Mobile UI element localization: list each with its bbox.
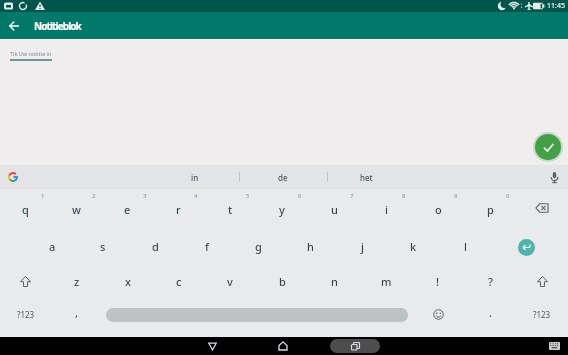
staticText: het	[360, 172, 373, 183]
staticText: b	[279, 274, 286, 289]
button[interactable]: r	[153, 189, 204, 226]
staticText: c	[176, 274, 182, 289]
button[interactable]: q	[0, 189, 51, 226]
staticText: q	[22, 202, 29, 217]
button[interactable]: !	[412, 263, 464, 300]
button[interactable]: z	[51, 263, 102, 300]
button[interactable]	[197, 337, 227, 355]
staticText: de	[278, 172, 288, 183]
button[interactable]: k	[387, 228, 439, 265]
button[interactable]	[330, 339, 380, 353]
button[interactable]: f	[181, 228, 233, 265]
button[interactable]: Tik Uw notitie in	[10, 50, 52, 61]
staticText: s	[100, 239, 106, 254]
button[interactable]	[516, 263, 568, 300]
staticText: 1	[41, 192, 45, 200]
staticText: Notitieblok	[34, 19, 81, 33]
button[interactable]: s	[77, 228, 129, 265]
staticText: 7	[350, 192, 354, 200]
button[interactable]: ?123	[516, 300, 568, 337]
button[interactable]	[516, 189, 568, 226]
staticText: k	[410, 239, 417, 254]
button[interactable]: n	[308, 263, 360, 300]
staticText: Tik Uw notitie in	[10, 50, 52, 57]
staticText: 3	[143, 192, 147, 200]
staticText: 0	[506, 192, 510, 200]
staticText: 9	[454, 192, 458, 200]
button[interactable]: t	[204, 189, 256, 226]
staticText: 5	[246, 192, 250, 200]
button[interactable]: in	[165, 165, 225, 189]
button[interactable]: i	[360, 189, 412, 226]
button[interactable]	[0, 12, 27, 39]
staticText: in	[191, 172, 199, 183]
button[interactable]: u	[308, 189, 360, 226]
staticText: ?123	[533, 309, 551, 320]
staticText: !	[436, 274, 440, 289]
staticText: v	[227, 274, 233, 289]
button[interactable]: c	[153, 263, 204, 300]
button[interactable]	[535, 134, 561, 160]
button[interactable]: e	[102, 189, 153, 226]
button[interactable]: m	[360, 263, 412, 300]
button[interactable]: het	[336, 165, 396, 189]
staticText: l	[464, 239, 467, 254]
staticText: j	[361, 239, 364, 254]
button[interactable]	[268, 337, 298, 355]
staticText: i	[385, 202, 388, 217]
staticText: ?	[488, 274, 493, 289]
staticText: f	[205, 239, 209, 254]
staticText: 8	[402, 192, 406, 200]
staticText: d	[152, 239, 159, 254]
staticText: g	[255, 239, 262, 254]
button[interactable]	[106, 308, 408, 322]
staticText: 2	[92, 192, 96, 200]
button[interactable]: o	[412, 189, 464, 226]
staticText: h	[307, 239, 314, 254]
button[interactable]: ?123	[0, 300, 51, 337]
button[interactable]: h	[284, 228, 336, 265]
staticText: 6	[298, 192, 302, 200]
staticText: 11:45	[547, 1, 565, 11]
staticText: ,	[75, 305, 79, 320]
button[interactable]: ,	[51, 300, 102, 337]
button[interactable]: p	[464, 189, 516, 226]
staticText: n	[331, 274, 338, 289]
button[interactable]: w	[51, 189, 102, 226]
button[interactable]: d	[129, 228, 181, 265]
staticText: r	[176, 202, 181, 217]
staticText: t	[228, 202, 233, 217]
button[interactable]	[518, 239, 535, 256]
button[interactable]: v	[204, 263, 256, 300]
button[interactable]	[412, 296, 464, 333]
button[interactable]: l	[439, 228, 491, 265]
staticText: e	[124, 202, 131, 217]
button[interactable]: y	[256, 189, 308, 226]
staticText: x	[125, 274, 131, 289]
button[interactable]	[8, 172, 18, 182]
staticText: ?123	[17, 309, 35, 320]
staticText: z	[74, 274, 80, 289]
button[interactable]: x	[102, 263, 153, 300]
button[interactable]: de	[253, 165, 313, 189]
button[interactable]	[546, 340, 562, 352]
staticText: w	[72, 202, 81, 217]
staticText: o	[435, 202, 442, 217]
button[interactable]: a	[26, 228, 78, 265]
button[interactable]: ?	[464, 263, 516, 300]
staticText: y	[279, 202, 285, 217]
staticText: a	[49, 239, 56, 254]
button[interactable]	[0, 263, 51, 300]
button[interactable]: b	[256, 263, 308, 300]
staticText: .	[489, 305, 492, 320]
staticText: m	[381, 274, 392, 289]
button[interactable]: g	[232, 228, 284, 265]
staticText: p	[487, 202, 494, 217]
staticText: 4	[194, 192, 198, 200]
button[interactable]: .	[464, 300, 516, 337]
staticText: u	[331, 202, 338, 217]
button[interactable]	[548, 171, 561, 184]
button[interactable]: j	[336, 228, 388, 265]
